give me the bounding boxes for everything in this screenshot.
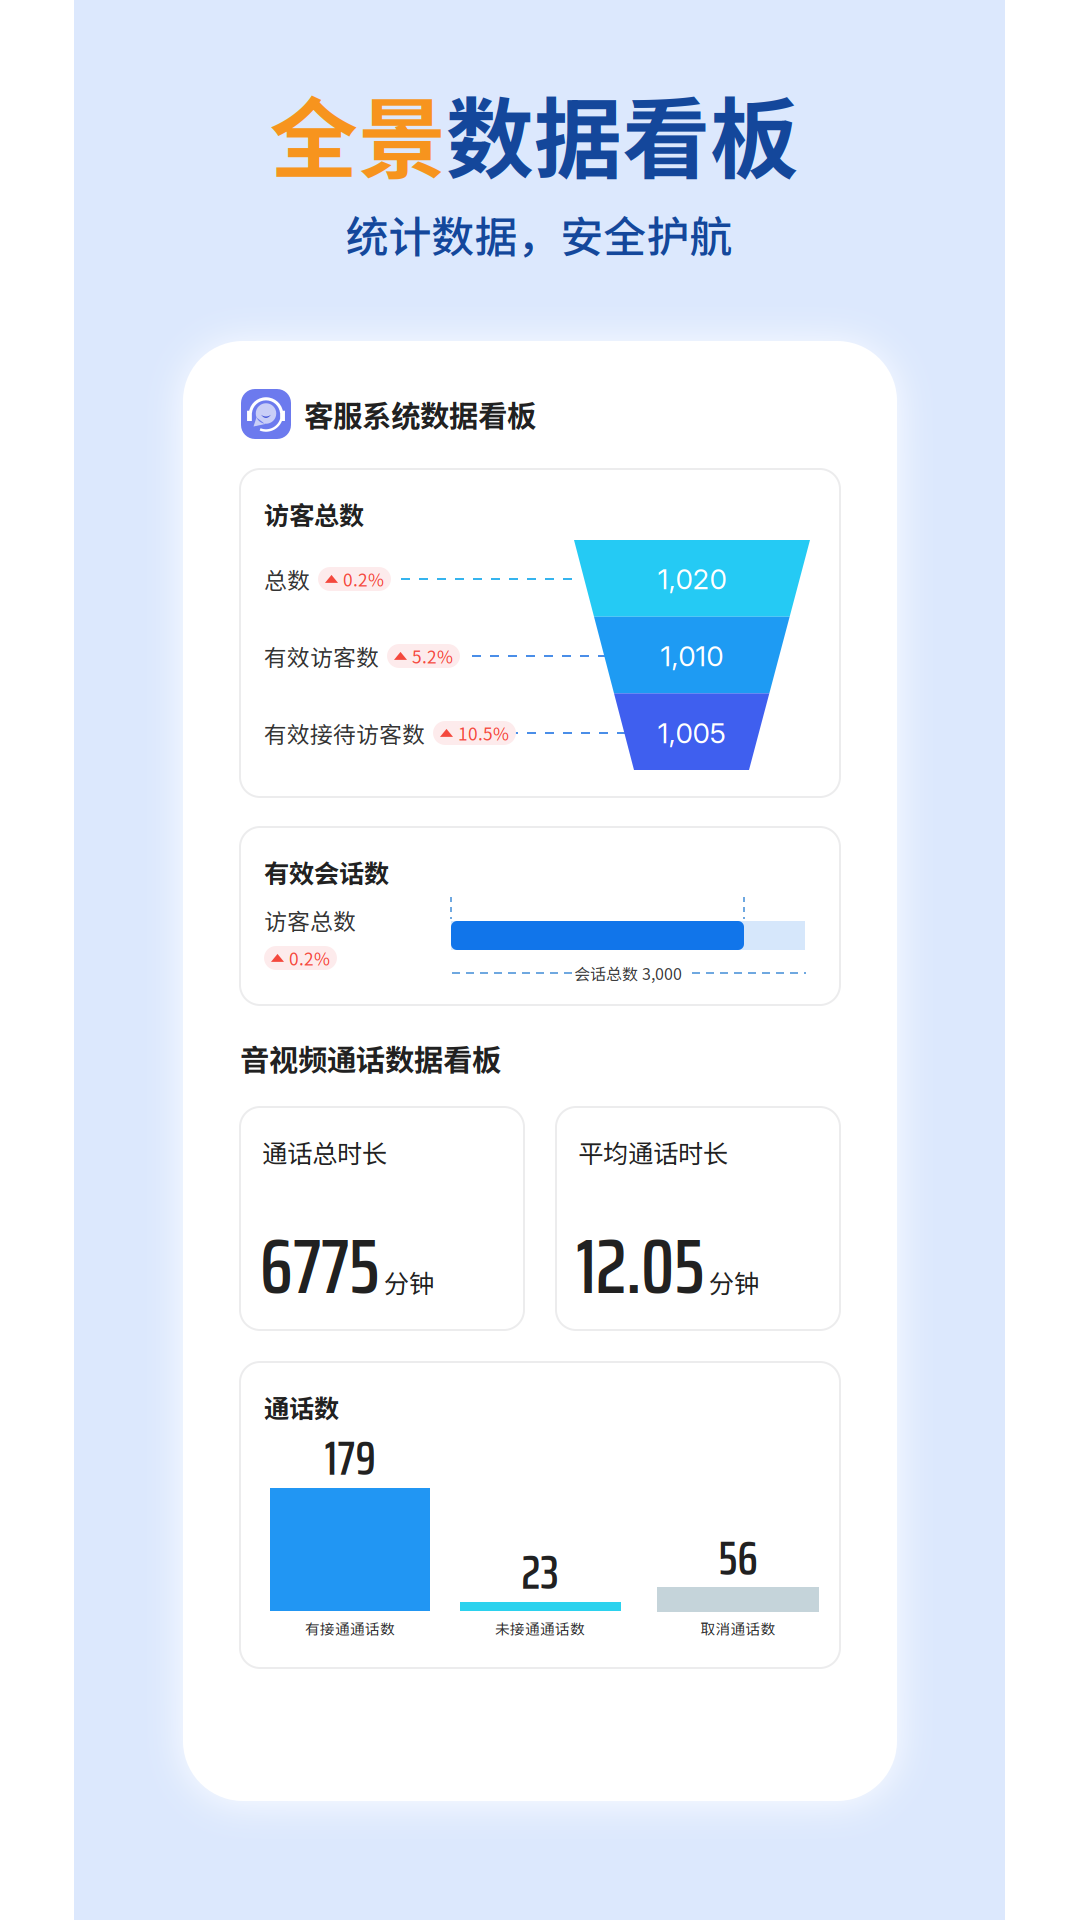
button[interactable]: 有效会话数 <box>240 827 840 1005</box>
staticText: 访客总数 <box>264 496 364 532</box>
button[interactable]: 通话数 <box>240 1362 840 1668</box>
staticText: 10.5% <box>458 720 509 746</box>
staticText: 179 <box>324 1420 375 1496</box>
button[interactable]: 平均通话时长 <box>556 1107 840 1330</box>
staticText: 会话总数 3,000 <box>574 961 682 985</box>
staticText: 有效访客数 <box>264 640 379 672</box>
staticText: 1,005 <box>658 716 726 750</box>
staticText: 6775 <box>260 1205 379 1327</box>
staticText: 56 <box>718 1520 757 1596</box>
button[interactable]: 访客总数 <box>240 469 840 797</box>
staticText: 取消通话数 <box>700 1617 775 1639</box>
staticText: 音视频通话数据看板 <box>240 1037 501 1079</box>
staticText: 23 <box>521 1534 558 1610</box>
staticText: 通话总时长 <box>262 1134 387 1170</box>
staticText: 分钟 <box>709 1263 759 1300</box>
button[interactable]: 通话总时长 <box>240 1107 524 1330</box>
staticText: 有接通通话数 <box>305 1617 395 1639</box>
staticText: 12.05 <box>576 1205 704 1327</box>
staticText: 0.2% <box>343 566 384 592</box>
staticText: 数据看板 <box>446 69 798 197</box>
staticText: 5.2% <box>412 643 453 669</box>
staticText: 1,020 <box>657 562 726 596</box>
staticText: 统计数据，安全护航 <box>345 203 732 265</box>
staticText: 1,010 <box>660 639 723 673</box>
staticText: 平均通话时长 <box>578 1134 728 1170</box>
staticText: 客服系统数据看板 <box>304 393 536 435</box>
staticText: 0.2% <box>289 945 330 971</box>
button[interactable]: 客服系统数据看板 <box>241 389 841 439</box>
staticText: 通话数 <box>264 1389 339 1425</box>
staticText: 分钟 <box>384 1263 434 1300</box>
staticText: 有效接待访客数 <box>264 717 425 749</box>
staticText: 总数 <box>264 563 310 595</box>
staticText: 全景 <box>270 69 446 197</box>
staticText: 有效会话数 <box>264 854 389 890</box>
staticText: 未接通通话数 <box>495 1617 585 1639</box>
staticText: 访客总数 <box>264 904 356 936</box>
